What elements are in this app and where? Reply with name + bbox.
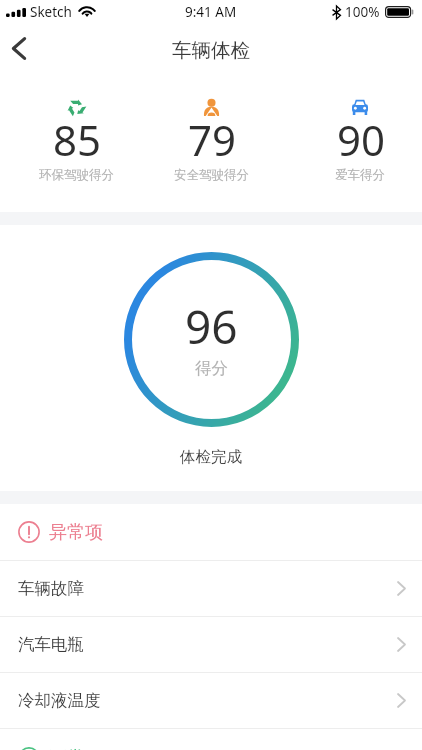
staticText: 爱车得分	[335, 167, 385, 183]
button[interactable]: Back	[0, 29, 38, 67]
button[interactable]: 汽车电瓶	[0, 617, 422, 672]
staticText: 环保驾驶得分	[39, 167, 114, 183]
button[interactable]: 车辆故障	[0, 561, 422, 616]
staticText: 体检完成	[180, 447, 242, 467]
staticText: 得分	[195, 358, 228, 379]
staticText: 冷却液温度	[18, 690, 101, 711]
staticText: 79	[188, 111, 237, 168]
staticText: 90	[337, 111, 386, 168]
staticText: Sketch	[30, 3, 72, 21]
staticText: 车辆体检	[172, 38, 250, 63]
button[interactable]: 异常项	[0, 504, 422, 560]
staticText: 车辆故障	[18, 578, 84, 599]
staticText: 异常项	[49, 521, 103, 544]
button[interactable]: 冷却液温度	[0, 673, 422, 728]
staticText: 85	[53, 111, 102, 168]
staticText: 正常项	[49, 747, 103, 750]
button[interactable]: 正常项	[0, 730, 422, 750]
staticText: 100%	[345, 3, 380, 21]
staticText: 9:41 AM	[185, 3, 237, 21]
staticText: 安全驾驶得分	[174, 167, 249, 183]
staticText: 汽车电瓶	[18, 634, 84, 655]
staticText: 96	[185, 295, 238, 358]
